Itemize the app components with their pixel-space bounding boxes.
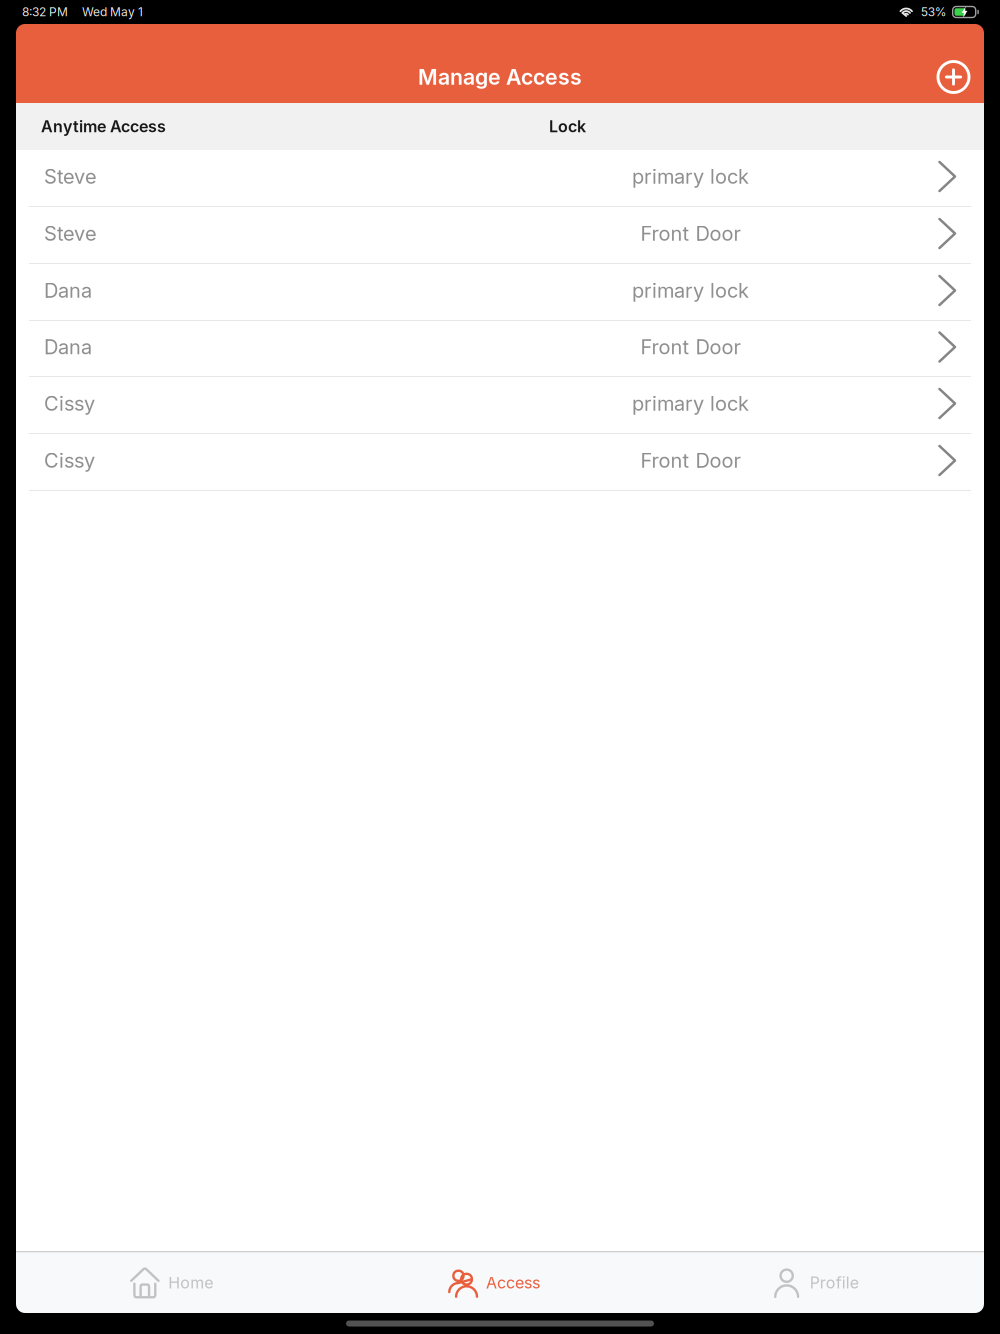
staticText: primary lock (632, 164, 749, 189)
staticText: Access (486, 1273, 540, 1292)
staticText: Front Door (640, 448, 740, 473)
staticText: Front Door (640, 221, 740, 246)
staticText: Anytime Access (41, 117, 166, 136)
button[interactable]: Dana (16, 321, 984, 377)
button[interactable]: Home (16, 1252, 339, 1313)
staticText: Home (168, 1273, 213, 1292)
staticText: Steve (44, 221, 97, 246)
button[interactable]: Dana (16, 264, 984, 321)
button[interactable]: Steve (16, 150, 984, 207)
staticText: primary lock (632, 278, 749, 303)
staticText: Wed May 1 (82, 5, 143, 19)
staticText: Profile (810, 1273, 859, 1292)
button[interactable]: Cissy (16, 377, 984, 434)
staticText: Cissy (44, 391, 95, 416)
staticText: Cissy (44, 448, 95, 473)
staticText: 53% (921, 5, 947, 19)
staticText: Front Door (640, 335, 740, 359)
button[interactable]: Profile (661, 1252, 984, 1313)
staticText: Dana (44, 278, 92, 303)
staticText: Manage Access (418, 64, 582, 90)
button[interactable]: Steve (16, 207, 984, 264)
staticText: primary lock (632, 391, 749, 416)
staticText: Lock (549, 117, 586, 136)
staticText: Steve (44, 164, 97, 189)
button[interactable]: Cissy (16, 434, 984, 491)
button[interactable]: Access (339, 1252, 661, 1313)
staticText: Dana (44, 335, 92, 359)
staticText: 8:32 PM (22, 5, 68, 19)
button[interactable]: Add access (926, 49, 981, 104)
